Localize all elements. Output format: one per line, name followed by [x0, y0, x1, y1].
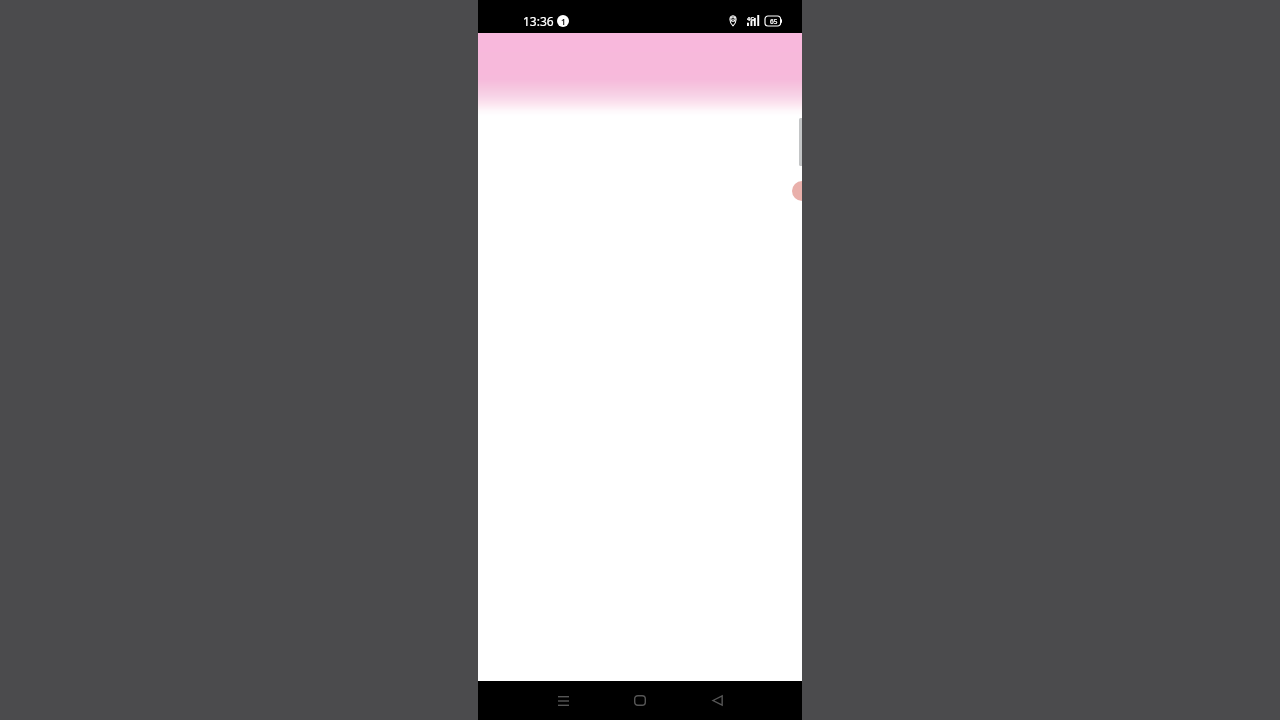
staticText: 65 — [770, 17, 778, 26]
staticText: 1 — [561, 16, 566, 27]
button[interactable]: Back — [697, 681, 737, 720]
staticText: 4G — [747, 15, 755, 22]
button[interactable]: Add — [792, 181, 802, 201]
button[interactable]: Scroll — [799, 118, 802, 166]
staticText: 13:36 — [523, 13, 554, 29]
button[interactable]: Home — [620, 681, 660, 720]
button[interactable]: Recents — [543, 681, 583, 720]
